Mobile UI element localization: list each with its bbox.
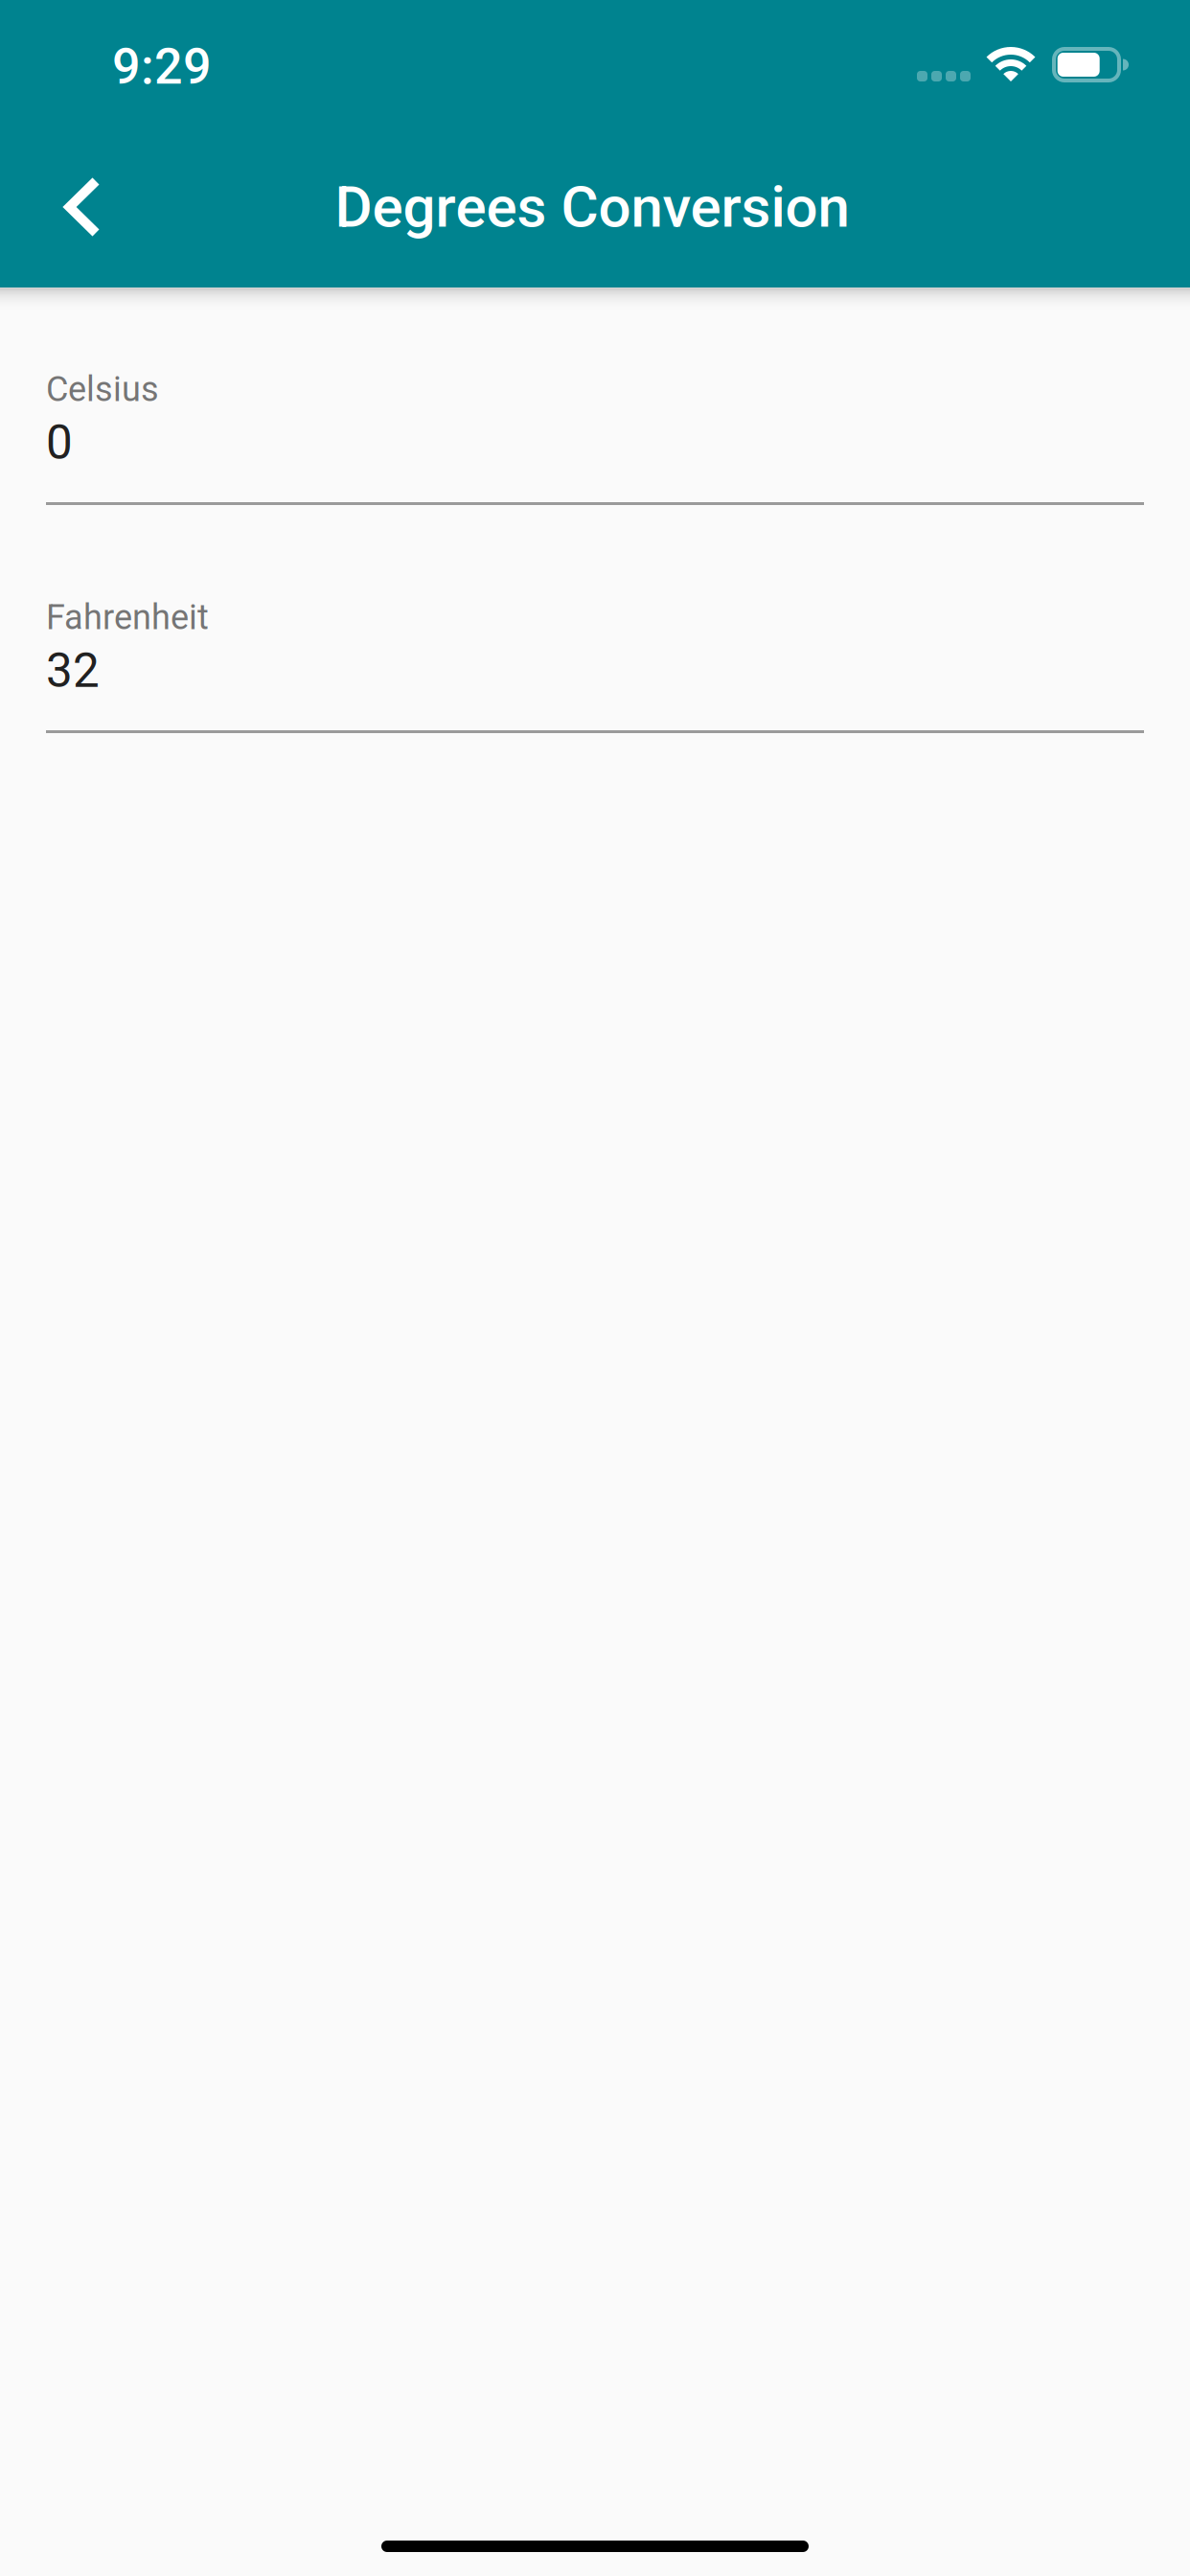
staticText: Celsius	[46, 369, 159, 409]
button[interactable]: Celsius	[46, 369, 1144, 505]
button[interactable]: Fahrenheit	[46, 597, 1144, 733]
staticText: 32	[46, 643, 100, 698]
staticText: 0	[46, 415, 73, 470]
staticText: Degrees Conversion	[335, 173, 849, 241]
button[interactable]: Back	[27, 153, 134, 261]
staticText: 9:29	[112, 37, 212, 96]
staticText: Fahrenheit	[46, 597, 209, 637]
